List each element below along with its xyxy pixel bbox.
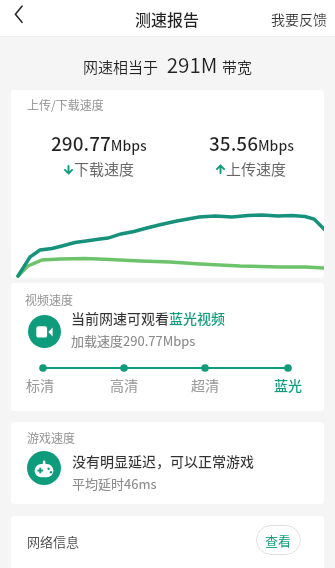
- staticText: 测速报告: [135, 7, 200, 30]
- staticText: 视频速度: [25, 291, 74, 308]
- button[interactable]: 查看: [256, 525, 301, 555]
- staticText: 蓝光: [274, 375, 302, 395]
- staticText: 加载速度290.77Mbps: [71, 331, 196, 350]
- button[interactable]: 高清: [107, 375, 141, 395]
- button[interactable]: 蓝光: [271, 375, 305, 395]
- staticText: 网速相当于 291M 带宽: [83, 49, 253, 79]
- staticText: 高清: [110, 375, 138, 395]
- staticText: 上传/下载速度: [27, 96, 104, 113]
- staticText: 标清: [26, 375, 54, 395]
- staticText: 网络信息: [27, 532, 80, 551]
- button[interactable]: 我要反馈: [271, 9, 335, 29]
- button[interactable]: [10, 4, 32, 26]
- staticText: 下载速度: [74, 158, 135, 180]
- staticText: 290.77Mbps: [51, 129, 147, 157]
- staticText: 游戏速度: [27, 429, 76, 446]
- button[interactable]: 超清: [188, 375, 222, 395]
- staticText: 没有明显延迟，可以正常游戏: [72, 451, 254, 471]
- staticText: 平均延时46ms: [72, 474, 157, 493]
- staticText: 我要反馈: [271, 9, 327, 29]
- staticText: 查看: [265, 531, 292, 550]
- button[interactable]: 标清: [23, 375, 57, 395]
- staticText: 上传速度: [226, 158, 287, 180]
- staticText: 35.56Mbps: [209, 129, 294, 157]
- staticText: 超清: [191, 375, 219, 395]
- staticText: 当前网速可观看蓝光视频: [71, 308, 225, 328]
